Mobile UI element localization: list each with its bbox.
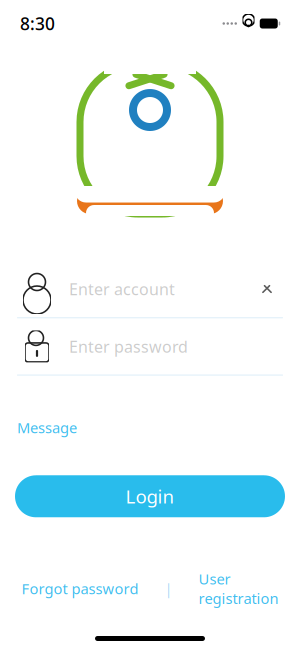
button[interactable]: Enter password (0, 318, 300, 374)
staticText: Enter password (69, 336, 188, 357)
staticText: User registration (198, 569, 278, 608)
staticText: Login (125, 484, 174, 509)
button[interactable]: User registration (198, 563, 278, 614)
button[interactable]: Enter account (0, 261, 300, 317)
button[interactable]: Message (17, 412, 77, 443)
staticText: | (164, 579, 172, 598)
button[interactable]: Login (15, 475, 285, 517)
staticText: Message (17, 418, 77, 437)
staticText: 8:30 (20, 12, 55, 35)
staticText: Enter account (69, 278, 175, 300)
staticText: Forgot password (21, 579, 138, 598)
button[interactable]: Forgot password (21, 573, 138, 604)
